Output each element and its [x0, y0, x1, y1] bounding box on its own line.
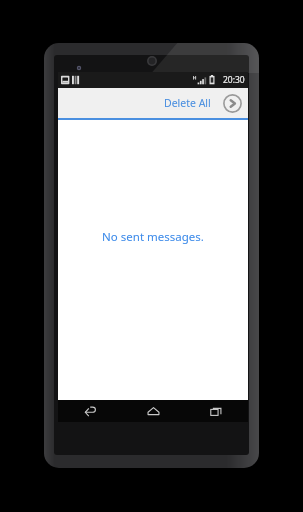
button[interactable]: Delete All	[160, 91, 215, 115]
staticText: 20:30	[223, 74, 245, 86]
staticText: Delete All	[164, 96, 211, 110]
button[interactable]: Recent apps	[185, 400, 248, 422]
button[interactable]: Home	[122, 400, 185, 422]
button[interactable]: More options	[219, 90, 245, 116]
staticText: No sent messages.	[102, 229, 204, 245]
button[interactable]: Back	[58, 400, 122, 422]
